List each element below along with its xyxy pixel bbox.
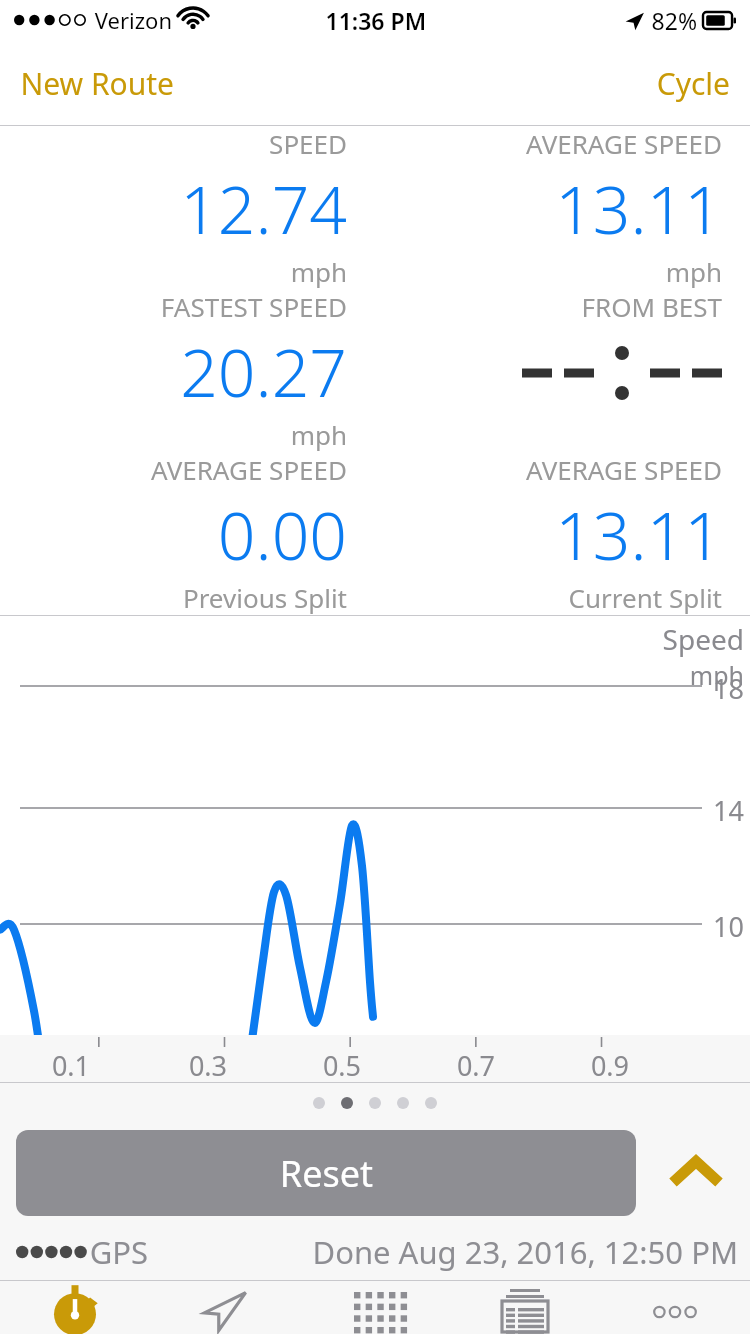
staticText: Done Aug 23, 2016, 12:50 PM	[312, 1231, 738, 1273]
staticText: 82%	[651, 5, 697, 36]
button[interactable]: Cycle	[636, 51, 750, 116]
staticText: SPEED	[269, 126, 347, 161]
staticText: mph	[665, 254, 722, 289]
staticText: 20.27	[180, 326, 347, 416]
staticText: 11:36 PM	[325, 5, 426, 36]
button[interactable]: FROM BEST	[375, 289, 750, 412]
staticText: AVERAGE SPEED	[526, 126, 722, 161]
staticText: 10	[713, 908, 744, 945]
button[interactable]: FASTEST SPEED	[0, 289, 375, 452]
staticText: Reset	[279, 1149, 373, 1198]
staticText: mph	[290, 417, 347, 452]
staticText: 0.9	[590, 1047, 629, 1083]
staticText: Speed	[662, 620, 744, 658]
button[interactable]: History	[450, 1281, 600, 1334]
button[interactable]: AVERAGE SPEED	[0, 452, 375, 615]
staticText: GPS	[89, 1231, 148, 1273]
staticText: 18	[713, 670, 744, 707]
staticText: AVERAGE SPEED	[151, 452, 347, 487]
staticText: 12.74	[180, 163, 347, 253]
staticText: Current Split	[568, 580, 722, 615]
staticText: 0.7	[456, 1047, 495, 1083]
staticText: 13.11	[555, 163, 722, 253]
button[interactable]: New Route	[0, 51, 194, 116]
button[interactable]: Map	[150, 1281, 300, 1334]
staticText: FASTEST SPEED	[160, 289, 347, 324]
button[interactable]: AVERAGE SPEED	[375, 126, 750, 289]
staticText: 0.00	[217, 489, 347, 579]
staticText: 0.1	[51, 1047, 90, 1083]
button[interactable]: More	[600, 1281, 750, 1334]
staticText: mph	[689, 658, 744, 692]
staticText: mph	[290, 254, 347, 289]
staticText: Previous Split	[182, 580, 347, 615]
staticText: 14	[713, 792, 744, 829]
button[interactable]: Reset	[16, 1130, 636, 1216]
staticText: 0.5	[322, 1047, 361, 1083]
button[interactable]: Stopwatch	[0, 1281, 150, 1334]
staticText: New Route	[20, 63, 174, 104]
button[interactable]: AVERAGE SPEED	[375, 452, 750, 615]
button[interactable]: Calendar	[300, 1281, 450, 1334]
button[interactable]: SPEED	[0, 126, 375, 289]
staticText: Cycle	[656, 63, 730, 104]
staticText: FROM BEST	[581, 289, 722, 324]
staticText: AVERAGE SPEED	[526, 452, 722, 487]
staticText: 0.3	[188, 1047, 227, 1083]
staticText: 13.11	[555, 489, 722, 579]
button[interactable]: Expand	[656, 1133, 736, 1213]
staticText: Verizon	[94, 5, 172, 35]
